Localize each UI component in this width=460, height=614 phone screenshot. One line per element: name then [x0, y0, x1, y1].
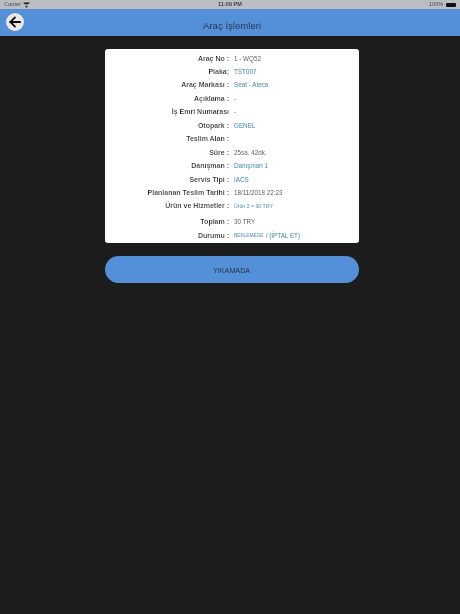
- staticText: -: [234, 108, 237, 115]
- staticText: Durumu :: [59, 232, 229, 240]
- button[interactable]: YIKAMADA: [105, 256, 359, 283]
- staticText: Planlanan Teslim Tarihi :: [59, 189, 229, 197]
- staticText: Araç Markası :: [59, 81, 229, 89]
- staticText: Toplam :: [59, 218, 229, 226]
- staticText: 30 TRY: [234, 218, 256, 225]
- staticText: Servis Tipi :: [59, 176, 229, 184]
- staticText: Araç İşlemleri: [203, 20, 262, 31]
- staticText: IACS: [234, 176, 249, 183]
- staticText: Ürün ve Hizmetler :: [59, 202, 229, 210]
- staticText: Plaka:: [59, 68, 229, 76]
- staticText: 1 - WQ52: [234, 55, 261, 62]
- staticText: YIKAMADA: [213, 266, 251, 274]
- staticText: / (İPTAL ET): [264, 232, 301, 239]
- staticText: Ürün 2 = 30 TRY: [234, 203, 273, 209]
- staticText: 11:06 PM: [218, 1, 242, 7]
- staticText: TST007: [234, 68, 257, 75]
- staticText: Danışman 1: [234, 162, 268, 169]
- staticText: 25sa. 42dk.: [234, 149, 267, 156]
- staticText: Süre :: [59, 149, 229, 157]
- staticText: Teslim Alan :: [59, 135, 229, 143]
- staticText: BEKLEMEDE: [234, 233, 264, 238]
- staticText: İş Emri Numarası: [59, 108, 229, 116]
- button[interactable]: Back: [6, 13, 24, 31]
- staticText: -: [234, 95, 237, 102]
- staticText: Carrier: [4, 1, 22, 7]
- staticText: Seat - Ateca: [234, 81, 269, 88]
- staticText: GENEL: [234, 122, 256, 129]
- staticText: 18/11/2018 22:23: [234, 189, 283, 196]
- staticText: Araç No :: [59, 55, 229, 63]
- staticText: 100%: [429, 1, 444, 7]
- staticText: Açıklama :: [59, 95, 229, 103]
- staticText: Danışman :: [59, 162, 229, 170]
- staticText: Otopark :: [59, 122, 229, 130]
